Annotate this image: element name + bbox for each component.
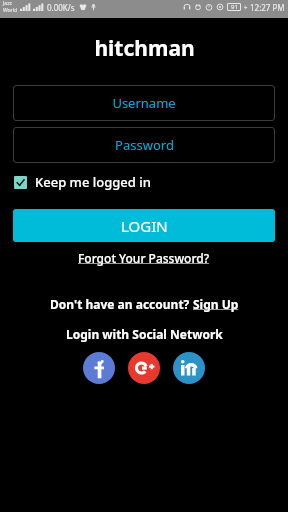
staticText: World xyxy=(3,7,18,14)
staticText: Jazz xyxy=(3,0,12,7)
button[interactable]: Password xyxy=(13,127,275,163)
staticText: Forgot Your Password? xyxy=(78,250,210,266)
staticText: Password xyxy=(115,136,174,154)
button[interactable]: Login with LinkedIn xyxy=(173,352,205,384)
staticText: Don't have an account? xyxy=(50,296,193,312)
button[interactable]: Forgot Your Password? xyxy=(74,248,214,268)
button[interactable]: Login with Google Plus xyxy=(128,352,160,384)
button[interactable]: Username xyxy=(13,85,275,121)
staticText: 12:27 PM xyxy=(250,2,285,13)
staticText: 0.00K/s xyxy=(47,2,75,13)
staticText: Sign Up xyxy=(193,296,239,312)
staticText: hitchman xyxy=(94,34,195,63)
staticText: Keep me logged in xyxy=(35,173,151,191)
staticText: Username xyxy=(112,94,176,112)
button[interactable]: Keep me logged in xyxy=(14,173,151,191)
button[interactable]: LOGIN xyxy=(13,209,275,242)
staticText: 91 xyxy=(231,3,238,11)
button[interactable]: Login with Facebook xyxy=(83,352,115,384)
button[interactable]: Sign Up xyxy=(193,296,239,312)
staticText: Login with Social Network xyxy=(66,326,223,342)
staticText: LOGIN xyxy=(121,216,168,236)
